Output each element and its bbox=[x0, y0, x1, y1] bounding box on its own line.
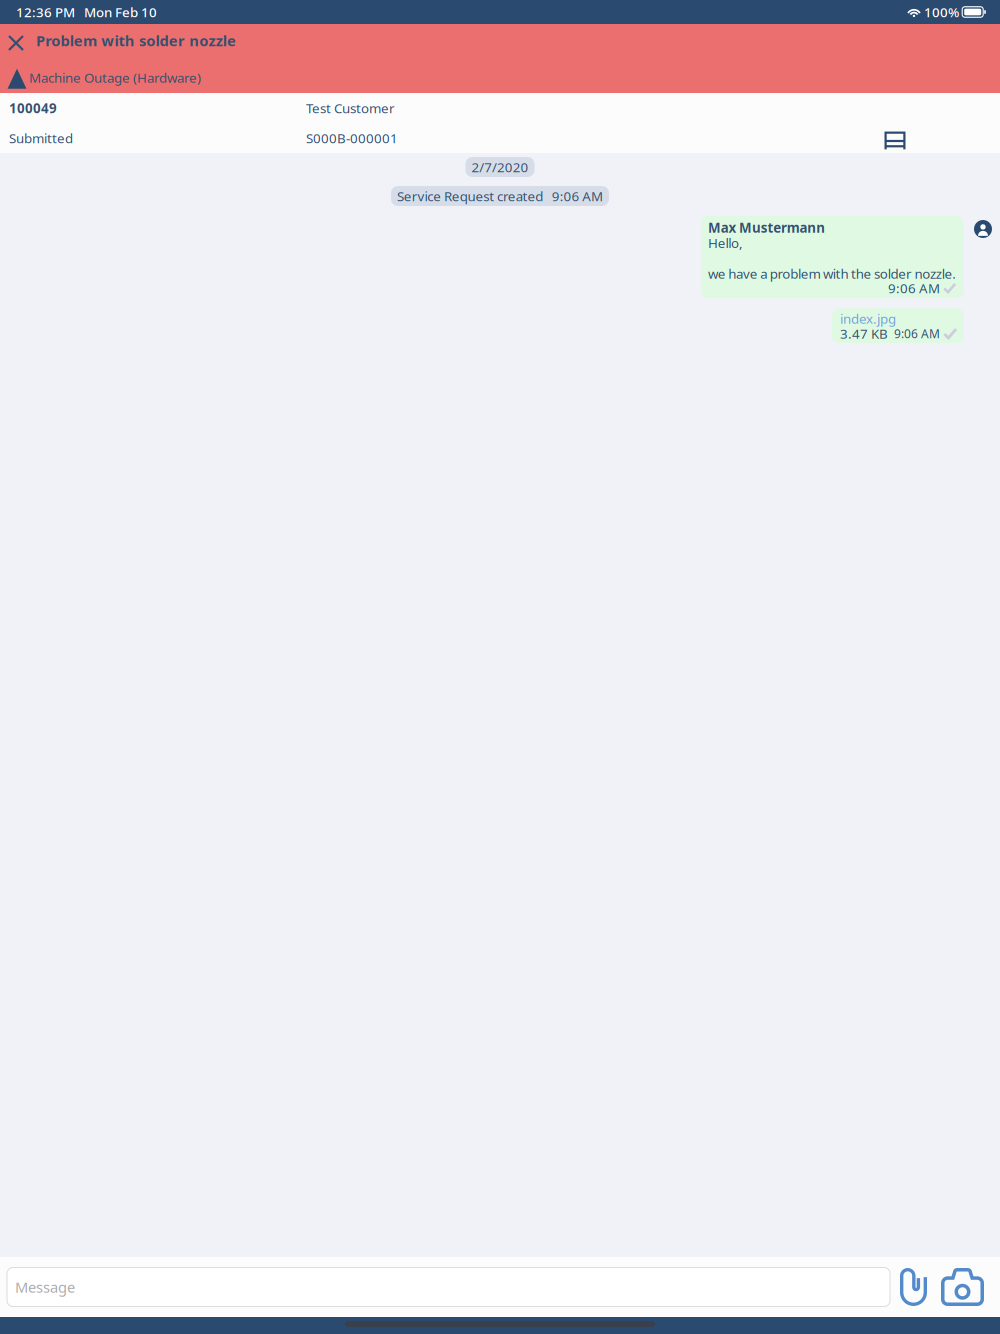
staticText: Message bbox=[15, 1277, 75, 1297]
staticText: 12:36 PM Mon Feb 10 bbox=[16, 3, 157, 21]
staticText: Max Mustermann bbox=[708, 219, 825, 236]
staticText: 9:06 AM bbox=[888, 279, 940, 297]
staticText: S000B-000001 bbox=[306, 129, 398, 147]
staticText: 100% bbox=[921, 3, 962, 21]
staticText: 3.47 KB bbox=[840, 325, 888, 342]
staticText: Hello, bbox=[708, 234, 743, 252]
staticText: Service Request created 9:06 AM bbox=[397, 187, 603, 205]
staticText: 9:06 AM bbox=[888, 326, 943, 342]
staticText: 2/7/2020 bbox=[471, 158, 529, 176]
button[interactable]: Service details bbox=[869, 120, 921, 156]
staticText: index.jpg bbox=[840, 310, 896, 327]
staticText: Test Customer bbox=[306, 99, 395, 117]
button[interactable]: Take photo bbox=[934, 1261, 991, 1313]
staticText: 100049 bbox=[9, 99, 57, 117]
button[interactable]: Close bbox=[0, 27, 32, 59]
staticText: Machine Outage (Hardware) bbox=[29, 69, 201, 86]
button[interactable]: Message bbox=[7, 1267, 890, 1306]
staticText: Submitted bbox=[9, 129, 73, 147]
staticText: Problem with solder nozzle bbox=[36, 31, 236, 50]
staticText: we have a problem with the solder nozzle… bbox=[708, 265, 956, 282]
button[interactable]: Attach file bbox=[893, 1261, 934, 1313]
